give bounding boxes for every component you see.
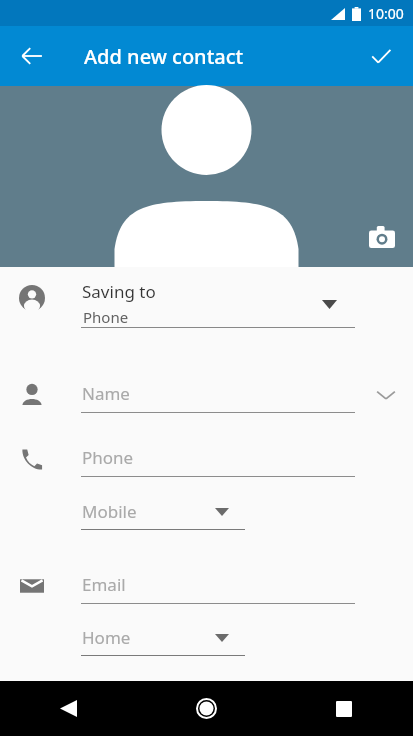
- button[interactable]: Back: [8, 32, 56, 80]
- staticText: Add new contact: [84, 43, 244, 70]
- staticText: Home: [82, 626, 131, 649]
- button[interactable]: Name: [0, 367, 413, 429]
- staticText: 10:00: [368, 4, 404, 23]
- button[interactable]: Add photo: [0, 86, 413, 267]
- button[interactable]: Take photo: [364, 219, 400, 255]
- staticText: Email: [82, 573, 126, 596]
- button[interactable]: Phone: [0, 431, 413, 493]
- button[interactable]: Saving to: [0, 267, 413, 344]
- button[interactable]: Back: [0, 681, 137, 736]
- staticText: Mobile: [82, 500, 137, 523]
- staticText: Phone: [82, 446, 134, 469]
- button[interactable]: Home: [137, 681, 275, 736]
- staticText: Saving to: [82, 280, 156, 303]
- button[interactable]: Mobile: [0, 494, 413, 544]
- button[interactable]: Email: [0, 558, 413, 620]
- staticText: Phone: [83, 307, 129, 327]
- staticText: Name: [82, 382, 130, 405]
- button[interactable]: Recent apps: [275, 681, 413, 736]
- button[interactable]: Home: [0, 620, 413, 670]
- button[interactable]: Save: [357, 32, 405, 80]
